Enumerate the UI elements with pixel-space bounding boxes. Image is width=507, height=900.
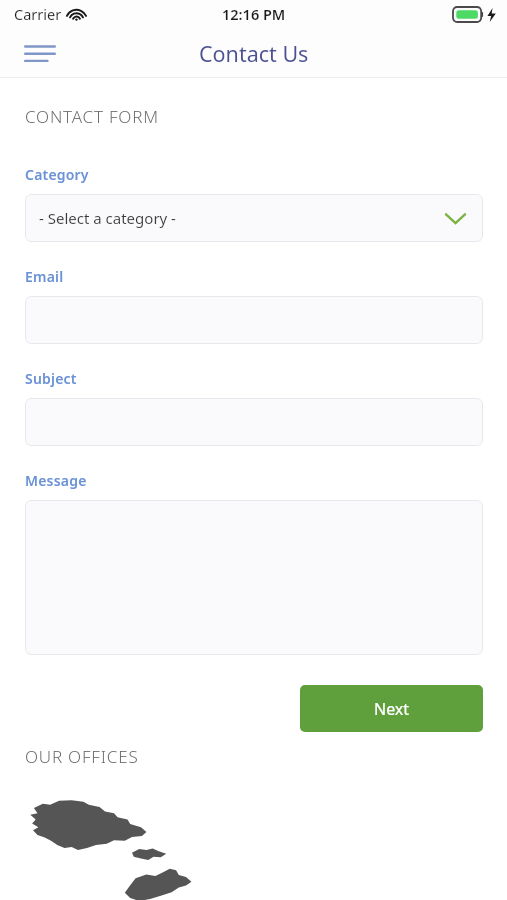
staticText: Email xyxy=(25,267,64,286)
staticText: Next xyxy=(374,698,410,720)
button[interactable]: Text input xyxy=(25,296,483,344)
staticText: OUR OFFICES xyxy=(25,745,139,768)
button[interactable]: Open navigation menu xyxy=(17,33,63,73)
button[interactable]: - Select a category - xyxy=(25,194,483,242)
staticText: Carrier xyxy=(14,4,62,24)
button[interactable]: Next xyxy=(300,685,483,732)
staticText: Message xyxy=(25,471,87,490)
staticText: Category xyxy=(25,165,89,184)
staticText: Contact Us xyxy=(199,39,309,68)
staticText: Subject xyxy=(25,369,77,388)
button[interactable]: Text input xyxy=(25,398,483,446)
staticText: 12:16 PM xyxy=(222,4,286,24)
staticText: CONTACT FORM xyxy=(25,105,159,128)
staticText: - Select a category - xyxy=(39,208,176,228)
